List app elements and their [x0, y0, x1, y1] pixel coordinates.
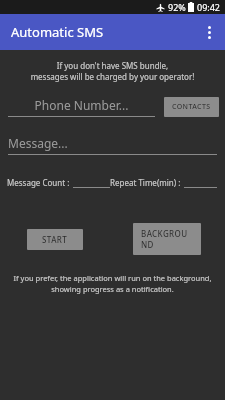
staticText: CONTACTS	[172, 102, 211, 112]
staticText: Automatic SMS	[11, 23, 104, 41]
button[interactable]: More options	[193, 16, 225, 48]
button[interactable]: Message...	[8, 135, 217, 155]
staticText: BACKGROUND	[141, 228, 193, 250]
button[interactable]: CONTACTS	[164, 97, 219, 117]
button[interactable]: Phone Number...	[8, 97, 155, 117]
button[interactable]: BACKGROUND	[133, 223, 201, 255]
staticText: Message...	[8, 135, 68, 151]
button[interactable]: START	[27, 229, 83, 250]
staticText: START	[42, 234, 68, 245]
staticText: If you prefer, the application will run …	[6, 273, 219, 294]
staticText: If you don't have SMS bundle, messages w…	[10, 60, 215, 82]
staticText: 09:42	[197, 1, 221, 13]
staticText: Repeat Time(min) :	[110, 177, 181, 188]
staticText: Phone Number...	[8, 97, 155, 113]
staticText: 92%	[168, 1, 186, 13]
staticText: Message Count :	[7, 177, 70, 188]
